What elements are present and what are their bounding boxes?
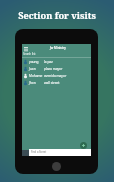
staticText: avenida mayor	[44, 74, 67, 78]
button[interactable]: Find a Street	[29, 149, 91, 156]
staticText: young	[29, 60, 44, 64]
button[interactable]: Jhon	[22, 79, 91, 86]
staticText: Jw Ministry	[50, 46, 66, 50]
staticText: Search list	[23, 52, 36, 56]
staticText: Find a Street	[31, 150, 47, 154]
staticText: la paz	[44, 60, 53, 64]
button[interactable]: Mohamed	[22, 72, 91, 79]
button[interactable]: young	[22, 58, 91, 65]
staticText: Jhon	[29, 81, 44, 85]
staticText: plaza mayor	[44, 67, 63, 71]
button[interactable]: Open navigation menu	[23, 46, 29, 52]
button[interactable]: Juan	[22, 65, 91, 72]
staticText: Mohamed	[29, 74, 44, 78]
staticText: Juan	[29, 67, 44, 71]
staticText: Section for visits	[0, 9, 114, 22]
staticText: wall street	[44, 81, 60, 85]
button[interactable]: Add	[80, 142, 87, 149]
